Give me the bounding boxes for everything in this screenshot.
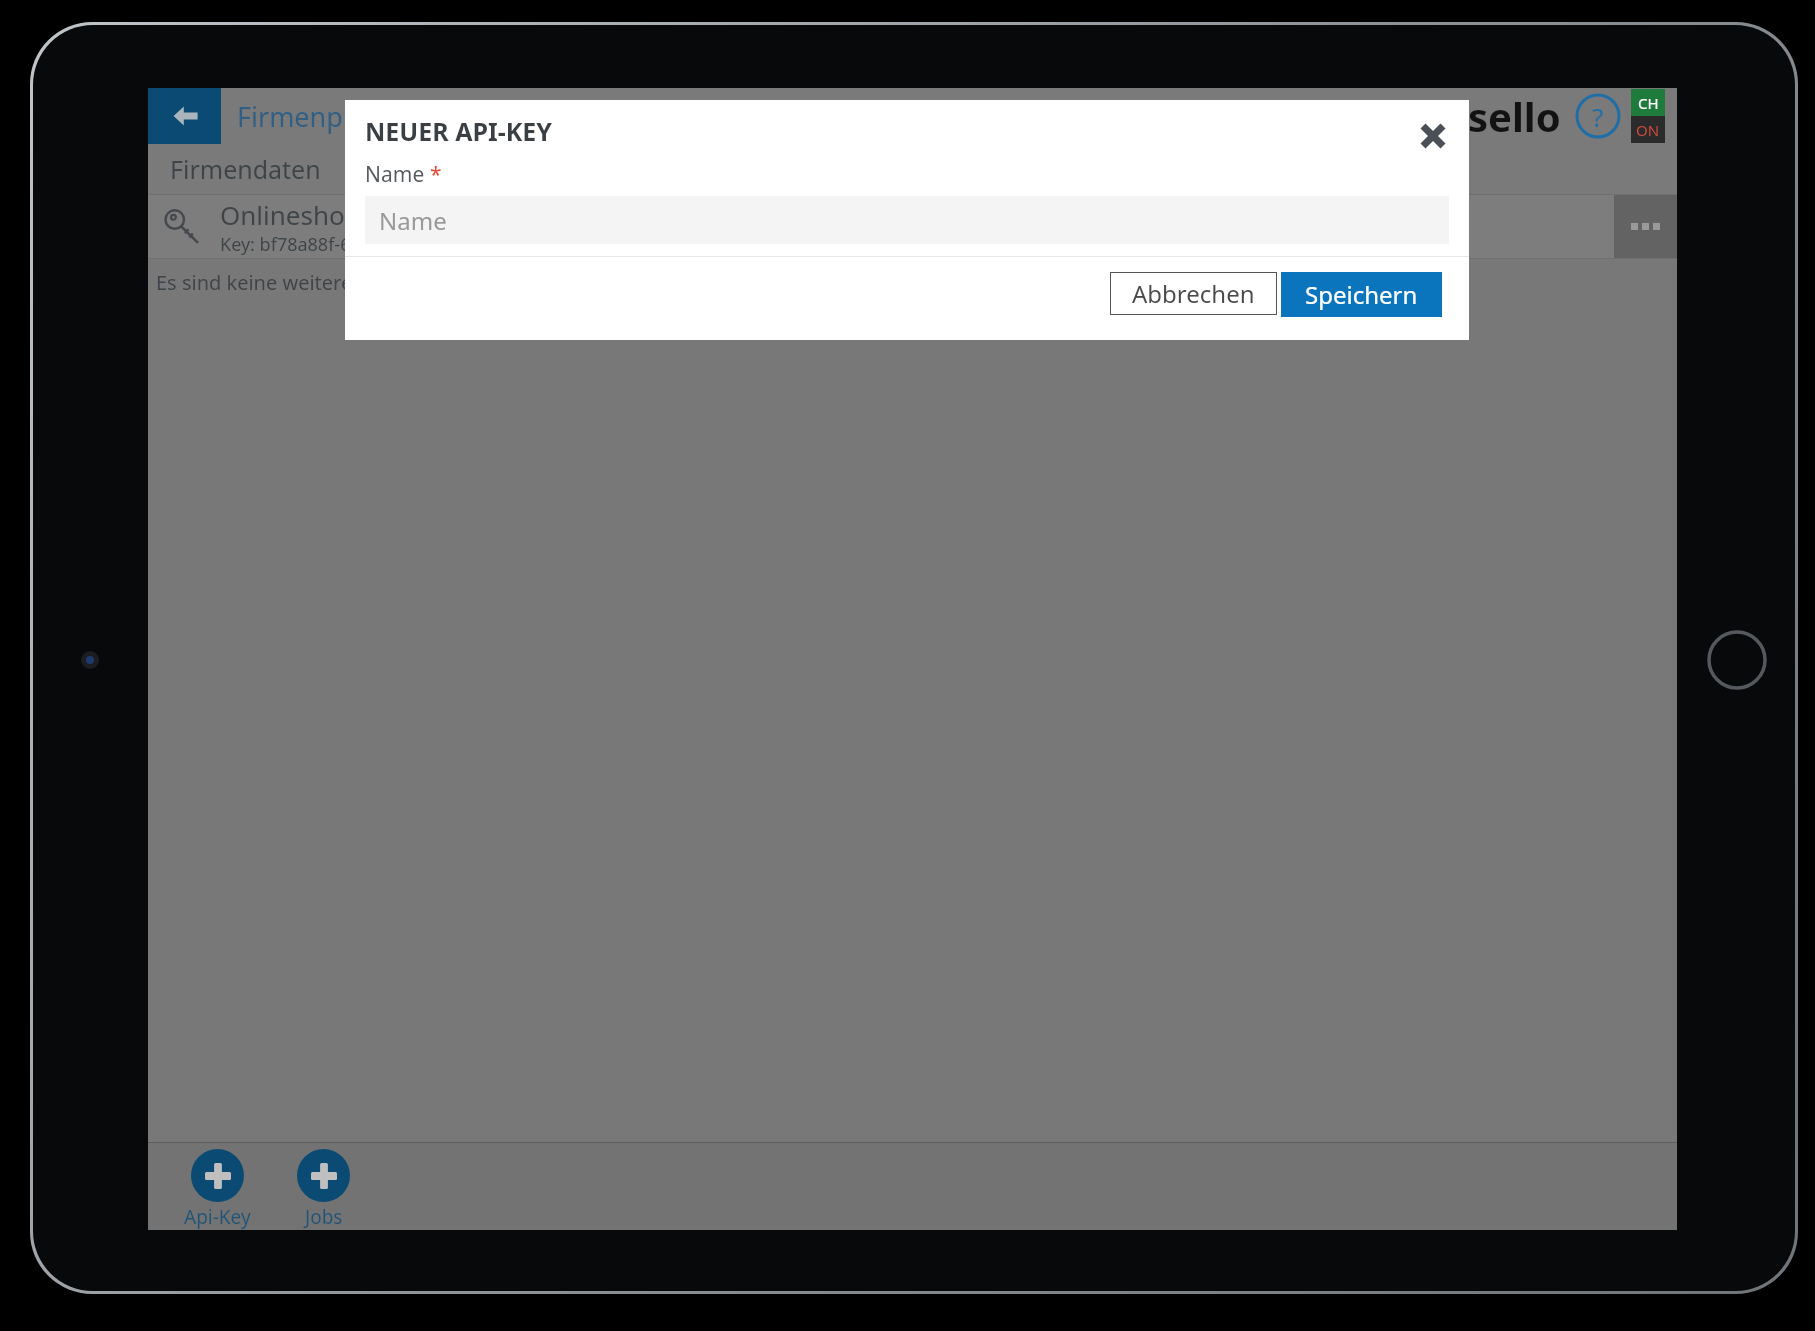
staticText: Api-Key <box>184 1204 251 1230</box>
staticText: ? <box>1592 99 1604 134</box>
staticText: * <box>430 160 442 189</box>
staticText: Es sind keine weiteren Einträge vorhande… <box>156 269 562 296</box>
button[interactable]: Abbrechen <box>1110 272 1277 315</box>
button[interactable]: Onlineshop <box>148 195 1677 258</box>
button[interactable]: Help <box>1575 93 1621 139</box>
staticText: Firmendaten <box>170 152 321 186</box>
button[interactable]: Close <box>1411 114 1455 158</box>
staticText: CH <box>1638 93 1659 113</box>
staticText: Name <box>379 204 447 237</box>
button[interactable]: Speichern <box>1281 272 1442 317</box>
button[interactable]: Jobs <box>281 1149 366 1230</box>
button[interactable]: Lizenzen <box>333 144 460 194</box>
staticText: NEUER API-KEY <box>365 114 552 148</box>
button[interactable]: Api-Key <box>175 1149 260 1230</box>
button[interactable]: More options <box>1614 195 1677 258</box>
staticText: Speichern <box>1305 278 1418 311</box>
staticText: Onlineshop <box>220 197 361 232</box>
button[interactable]: Firmendaten <box>158 144 333 194</box>
staticText: Firmenprofil <box>237 98 394 135</box>
button[interactable]: CH <box>1631 89 1665 143</box>
staticText: Abbrechen <box>1132 277 1255 310</box>
staticText: ON <box>1636 120 1660 140</box>
staticText: Lizenzen <box>345 152 448 186</box>
button[interactable]: Name <box>365 196 1449 244</box>
button[interactable]: Back <box>148 88 221 144</box>
staticText: asello <box>1444 89 1561 143</box>
staticText: Key: bf78a88f-6b7e-4c21-9f3a-1d5e8c4b2a9… <box>220 232 599 257</box>
staticText: Jobs <box>305 1204 343 1230</box>
staticText: Name <box>365 160 425 189</box>
